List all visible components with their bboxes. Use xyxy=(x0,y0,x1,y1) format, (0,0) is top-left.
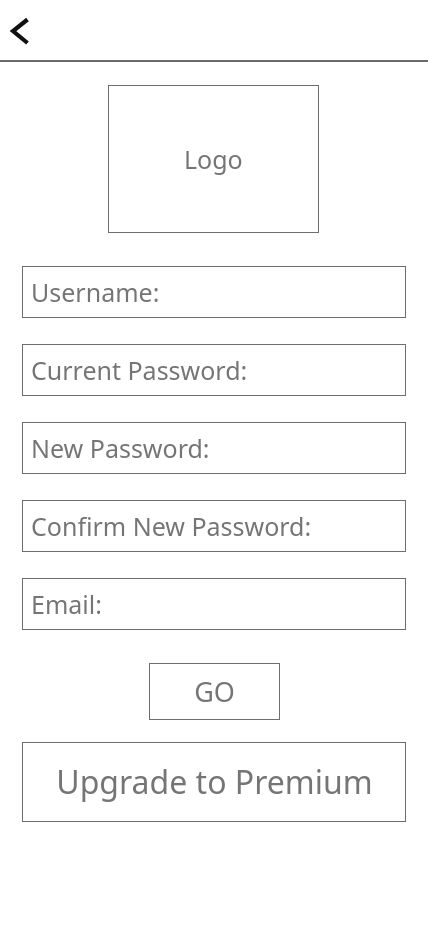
staticText: Logo xyxy=(184,142,243,176)
button[interactable]: GO xyxy=(149,663,280,720)
staticText: Username: xyxy=(31,275,160,309)
button[interactable]: Email: xyxy=(22,578,406,630)
button[interactable]: Logo xyxy=(108,85,319,233)
staticText: Upgrade to Premium xyxy=(56,760,373,804)
staticText: GO xyxy=(194,673,235,710)
staticText: Current Password: xyxy=(31,353,248,387)
staticText: New Password: xyxy=(31,431,210,465)
button[interactable]: Back xyxy=(0,6,48,54)
button[interactable]: Current Password: xyxy=(22,344,406,396)
button[interactable]: Username: xyxy=(22,266,406,318)
button[interactable]: Upgrade to Premium xyxy=(22,742,406,822)
button[interactable]: New Password: xyxy=(22,422,406,474)
button[interactable]: Confirm New Password: xyxy=(22,500,406,552)
staticText: Email: xyxy=(31,587,102,621)
staticText: Confirm New Password: xyxy=(31,509,312,543)
